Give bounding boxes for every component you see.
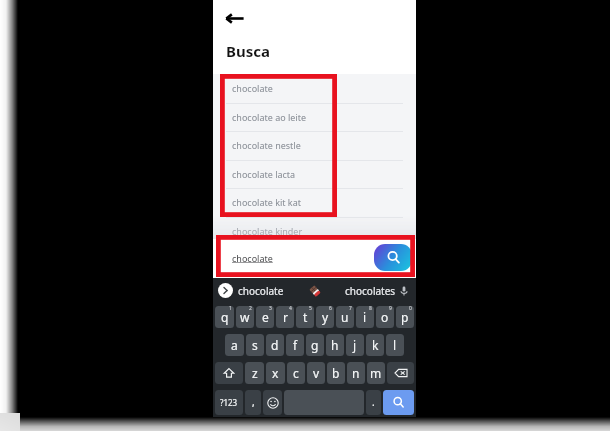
staticText: e <box>262 309 269 325</box>
staticText: chocolate ao leite <box>232 111 307 123</box>
button[interactable]: q <box>215 306 234 328</box>
button[interactable]: chocolate <box>213 74 416 102</box>
staticText: 8 <box>369 306 372 312</box>
button[interactable]: p <box>396 306 414 328</box>
staticText: y <box>322 309 329 325</box>
button[interactable]: ?123 <box>215 390 243 415</box>
staticText: 5 <box>309 306 312 312</box>
button[interactable]: v <box>307 362 325 384</box>
staticText: n <box>352 365 360 381</box>
button[interactable]: l <box>386 334 404 356</box>
staticText: o <box>381 309 389 325</box>
button[interactable]: o <box>376 306 394 328</box>
staticText: 9 <box>389 306 392 312</box>
staticText: a <box>231 337 238 353</box>
button[interactable]: chocolate kit kat <box>213 188 416 216</box>
staticText: 3 <box>269 306 272 312</box>
button[interactable]: x <box>266 362 285 384</box>
staticText: b <box>332 365 340 381</box>
staticText: chocolate <box>232 252 273 264</box>
staticText: z <box>252 365 258 381</box>
button[interactable]: h <box>326 334 344 356</box>
staticText: 6 <box>329 306 332 312</box>
staticText: u <box>341 309 349 325</box>
button[interactable]: e <box>256 306 274 328</box>
staticText: g <box>311 337 319 353</box>
button[interactable]: m <box>367 362 385 384</box>
button[interactable]: Back <box>223 7 245 29</box>
button[interactable]: c <box>287 362 305 384</box>
button[interactable]: w <box>236 306 254 328</box>
button[interactable]: Emoji <box>263 390 282 415</box>
button[interactable]: a <box>225 334 244 356</box>
staticText: k <box>372 337 379 353</box>
staticText: x <box>272 365 279 381</box>
button[interactable]: More suggestions <box>218 283 233 298</box>
staticText: chocolate <box>238 284 284 298</box>
staticText: s <box>252 337 258 353</box>
button[interactable]: r <box>276 306 294 328</box>
staticText: 0 <box>409 306 412 312</box>
staticText: i <box>363 309 367 325</box>
staticText: chocolate kinder <box>232 225 303 237</box>
button[interactable]: Shift <box>215 362 243 384</box>
button[interactable]: chocolate nestle <box>213 131 416 159</box>
button[interactable]: . <box>366 390 381 415</box>
staticText: ?123 <box>220 397 238 408</box>
staticText: c <box>293 365 299 381</box>
staticText: , <box>252 395 255 409</box>
staticText: Busca <box>226 41 270 61</box>
button[interactable]: Voice input <box>397 284 410 297</box>
staticText: r <box>283 309 288 325</box>
button[interactable]: Search <box>374 244 412 271</box>
button[interactable]: i <box>356 306 374 328</box>
button[interactable]: g <box>306 334 324 356</box>
staticText: l <box>393 337 397 353</box>
staticText: chocolate nestle <box>232 139 301 151</box>
staticText: chocolates <box>345 284 396 298</box>
staticText: t <box>303 309 308 325</box>
staticText: chocolate <box>232 82 273 94</box>
staticText: 7 <box>349 306 352 312</box>
button[interactable]: y <box>316 306 334 328</box>
staticText: v <box>313 365 320 381</box>
staticText: j <box>353 337 357 353</box>
staticText: f <box>293 337 298 353</box>
button[interactable]: Search <box>383 390 414 415</box>
button[interactable]: chocolate kinder <box>213 217 416 245</box>
staticText: w <box>240 309 250 325</box>
button[interactable]: chocolate lacta <box>213 160 416 188</box>
staticText: chocolate lacta <box>232 168 296 180</box>
staticText: h <box>331 337 339 353</box>
staticText: chocolate kit kat <box>232 196 301 208</box>
staticText: d <box>271 337 279 353</box>
staticText: 4 <box>289 306 292 312</box>
button[interactable]: Backspace <box>387 362 414 384</box>
button[interactable]: k <box>366 334 384 356</box>
button[interactable]: n <box>347 362 365 384</box>
staticText: p <box>401 309 409 325</box>
button[interactable]: , <box>245 390 261 415</box>
button[interactable]: t <box>296 306 314 328</box>
staticText: q <box>221 309 229 325</box>
button[interactable]: s <box>246 334 264 356</box>
button[interactable]: j <box>346 334 364 356</box>
staticText: 2 <box>249 306 252 312</box>
staticText: m <box>370 365 382 381</box>
staticText: . <box>372 395 375 409</box>
button[interactable]: b <box>327 362 345 384</box>
button[interactable]: f <box>286 334 304 356</box>
button[interactable]: chocolate ao leite <box>213 103 416 131</box>
button[interactable]: u <box>336 306 354 328</box>
button[interactable]: z <box>245 362 264 384</box>
button[interactable]: d <box>266 334 284 356</box>
staticText: 1 <box>229 306 232 312</box>
